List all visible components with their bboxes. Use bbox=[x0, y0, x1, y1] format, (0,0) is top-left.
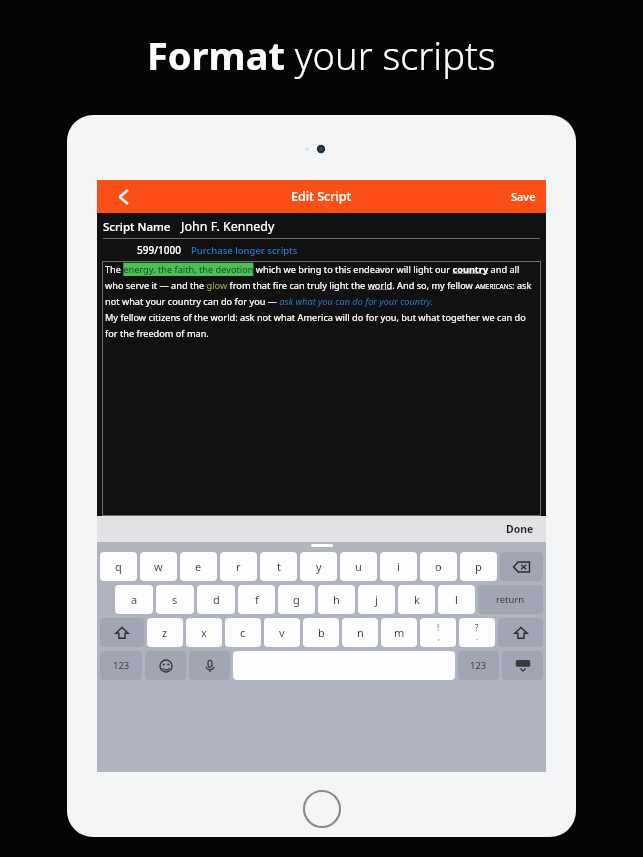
staticText: . bbox=[476, 633, 478, 643]
staticText: d bbox=[213, 592, 220, 607]
staticText: 599/1000 bbox=[137, 243, 181, 257]
button[interactable]: Back bbox=[97, 180, 151, 213]
button[interactable]: Shift bbox=[100, 618, 144, 647]
button[interactable]: y bbox=[300, 552, 337, 581]
button[interactable]: j bbox=[358, 585, 395, 614]
staticText: z bbox=[162, 625, 168, 640]
staticText: t bbox=[277, 559, 281, 574]
button[interactable]: a bbox=[115, 585, 153, 614]
staticText: ? bbox=[475, 622, 479, 633]
button[interactable]: Shift bbox=[498, 618, 543, 647]
button[interactable]: ? bbox=[459, 618, 495, 647]
staticText: m bbox=[394, 625, 405, 640]
button[interactable]: h bbox=[318, 585, 355, 614]
staticText: a bbox=[131, 592, 138, 607]
button[interactable]: g bbox=[278, 585, 315, 614]
staticText: Save bbox=[511, 189, 536, 204]
staticText: n bbox=[357, 625, 364, 640]
button[interactable]: l bbox=[438, 585, 475, 614]
button[interactable]: Emoji bbox=[145, 651, 186, 680]
staticText: s bbox=[172, 592, 178, 607]
staticText: 123 bbox=[470, 659, 487, 672]
staticText: k bbox=[414, 592, 420, 607]
staticText: q bbox=[115, 559, 122, 574]
button[interactable]: b bbox=[303, 618, 339, 647]
staticText: w bbox=[154, 559, 163, 574]
button[interactable]: i bbox=[380, 552, 417, 581]
button[interactable]: q bbox=[100, 552, 137, 581]
staticText: c bbox=[240, 625, 246, 640]
staticText: The energy, the faith, the devotion whic… bbox=[105, 263, 538, 339]
other: Home bbox=[303, 790, 341, 828]
button[interactable]: return bbox=[478, 585, 543, 614]
staticText: o bbox=[435, 559, 442, 574]
staticText: p bbox=[475, 559, 482, 574]
staticText: Edit Script bbox=[291, 188, 352, 205]
staticText: Script Name bbox=[103, 219, 171, 235]
button[interactable]: c bbox=[225, 618, 261, 647]
staticText: v bbox=[279, 625, 285, 640]
staticText: g bbox=[293, 592, 300, 607]
staticText: u bbox=[355, 559, 362, 574]
button[interactable]: v bbox=[264, 618, 300, 647]
staticText: l bbox=[455, 592, 458, 607]
button[interactable]: 123 bbox=[100, 651, 142, 680]
button[interactable]: Hide keyboard bbox=[502, 651, 543, 680]
button[interactable]: p bbox=[460, 552, 497, 581]
button[interactable]: s bbox=[156, 585, 194, 614]
button[interactable]: n bbox=[342, 618, 378, 647]
button[interactable]: ! bbox=[420, 618, 456, 647]
button[interactable]: d bbox=[197, 585, 235, 614]
staticText: x bbox=[201, 625, 207, 640]
button[interactable]: Save bbox=[501, 180, 546, 213]
button[interactable]: Backspace bbox=[500, 552, 543, 581]
button[interactable]: m bbox=[381, 618, 417, 647]
button[interactable]: e bbox=[180, 552, 217, 581]
staticText: Format your scripts bbox=[147, 29, 496, 81]
button[interactable]: Purchase longer scripts bbox=[191, 244, 298, 257]
button[interactable]: Dictate bbox=[189, 651, 230, 680]
button[interactable]: w bbox=[140, 552, 177, 581]
staticText: John F. Kennedy bbox=[181, 218, 275, 235]
button[interactable]: z bbox=[147, 618, 183, 647]
staticText: h bbox=[333, 592, 340, 607]
button[interactable]: r bbox=[220, 552, 257, 581]
staticText: Purchase longer scripts bbox=[191, 244, 298, 257]
button[interactable]: John F. Kennedy bbox=[181, 218, 540, 235]
button[interactable]: Done bbox=[494, 516, 546, 542]
staticText: return bbox=[496, 593, 525, 606]
staticText: Done bbox=[506, 522, 534, 536]
staticText: 123 bbox=[113, 659, 130, 672]
staticText: e bbox=[195, 559, 202, 574]
button[interactable]: The energy, the faith, the devotion whic… bbox=[102, 261, 541, 516]
button[interactable]: u bbox=[340, 552, 377, 581]
staticText: , bbox=[438, 633, 440, 643]
staticText: f bbox=[255, 592, 259, 607]
staticText: j bbox=[375, 592, 378, 607]
staticText: y bbox=[316, 559, 322, 574]
button[interactable]: 123 bbox=[458, 651, 499, 680]
staticText: ! bbox=[437, 622, 440, 633]
button[interactable]: o bbox=[420, 552, 457, 581]
button[interactable]: k bbox=[398, 585, 435, 614]
staticText: i bbox=[397, 559, 400, 574]
staticText: r bbox=[236, 559, 241, 574]
staticText: b bbox=[318, 625, 325, 640]
button[interactable]: x bbox=[186, 618, 222, 647]
button[interactable]: t bbox=[260, 552, 297, 581]
button[interactable]: f bbox=[238, 585, 275, 614]
